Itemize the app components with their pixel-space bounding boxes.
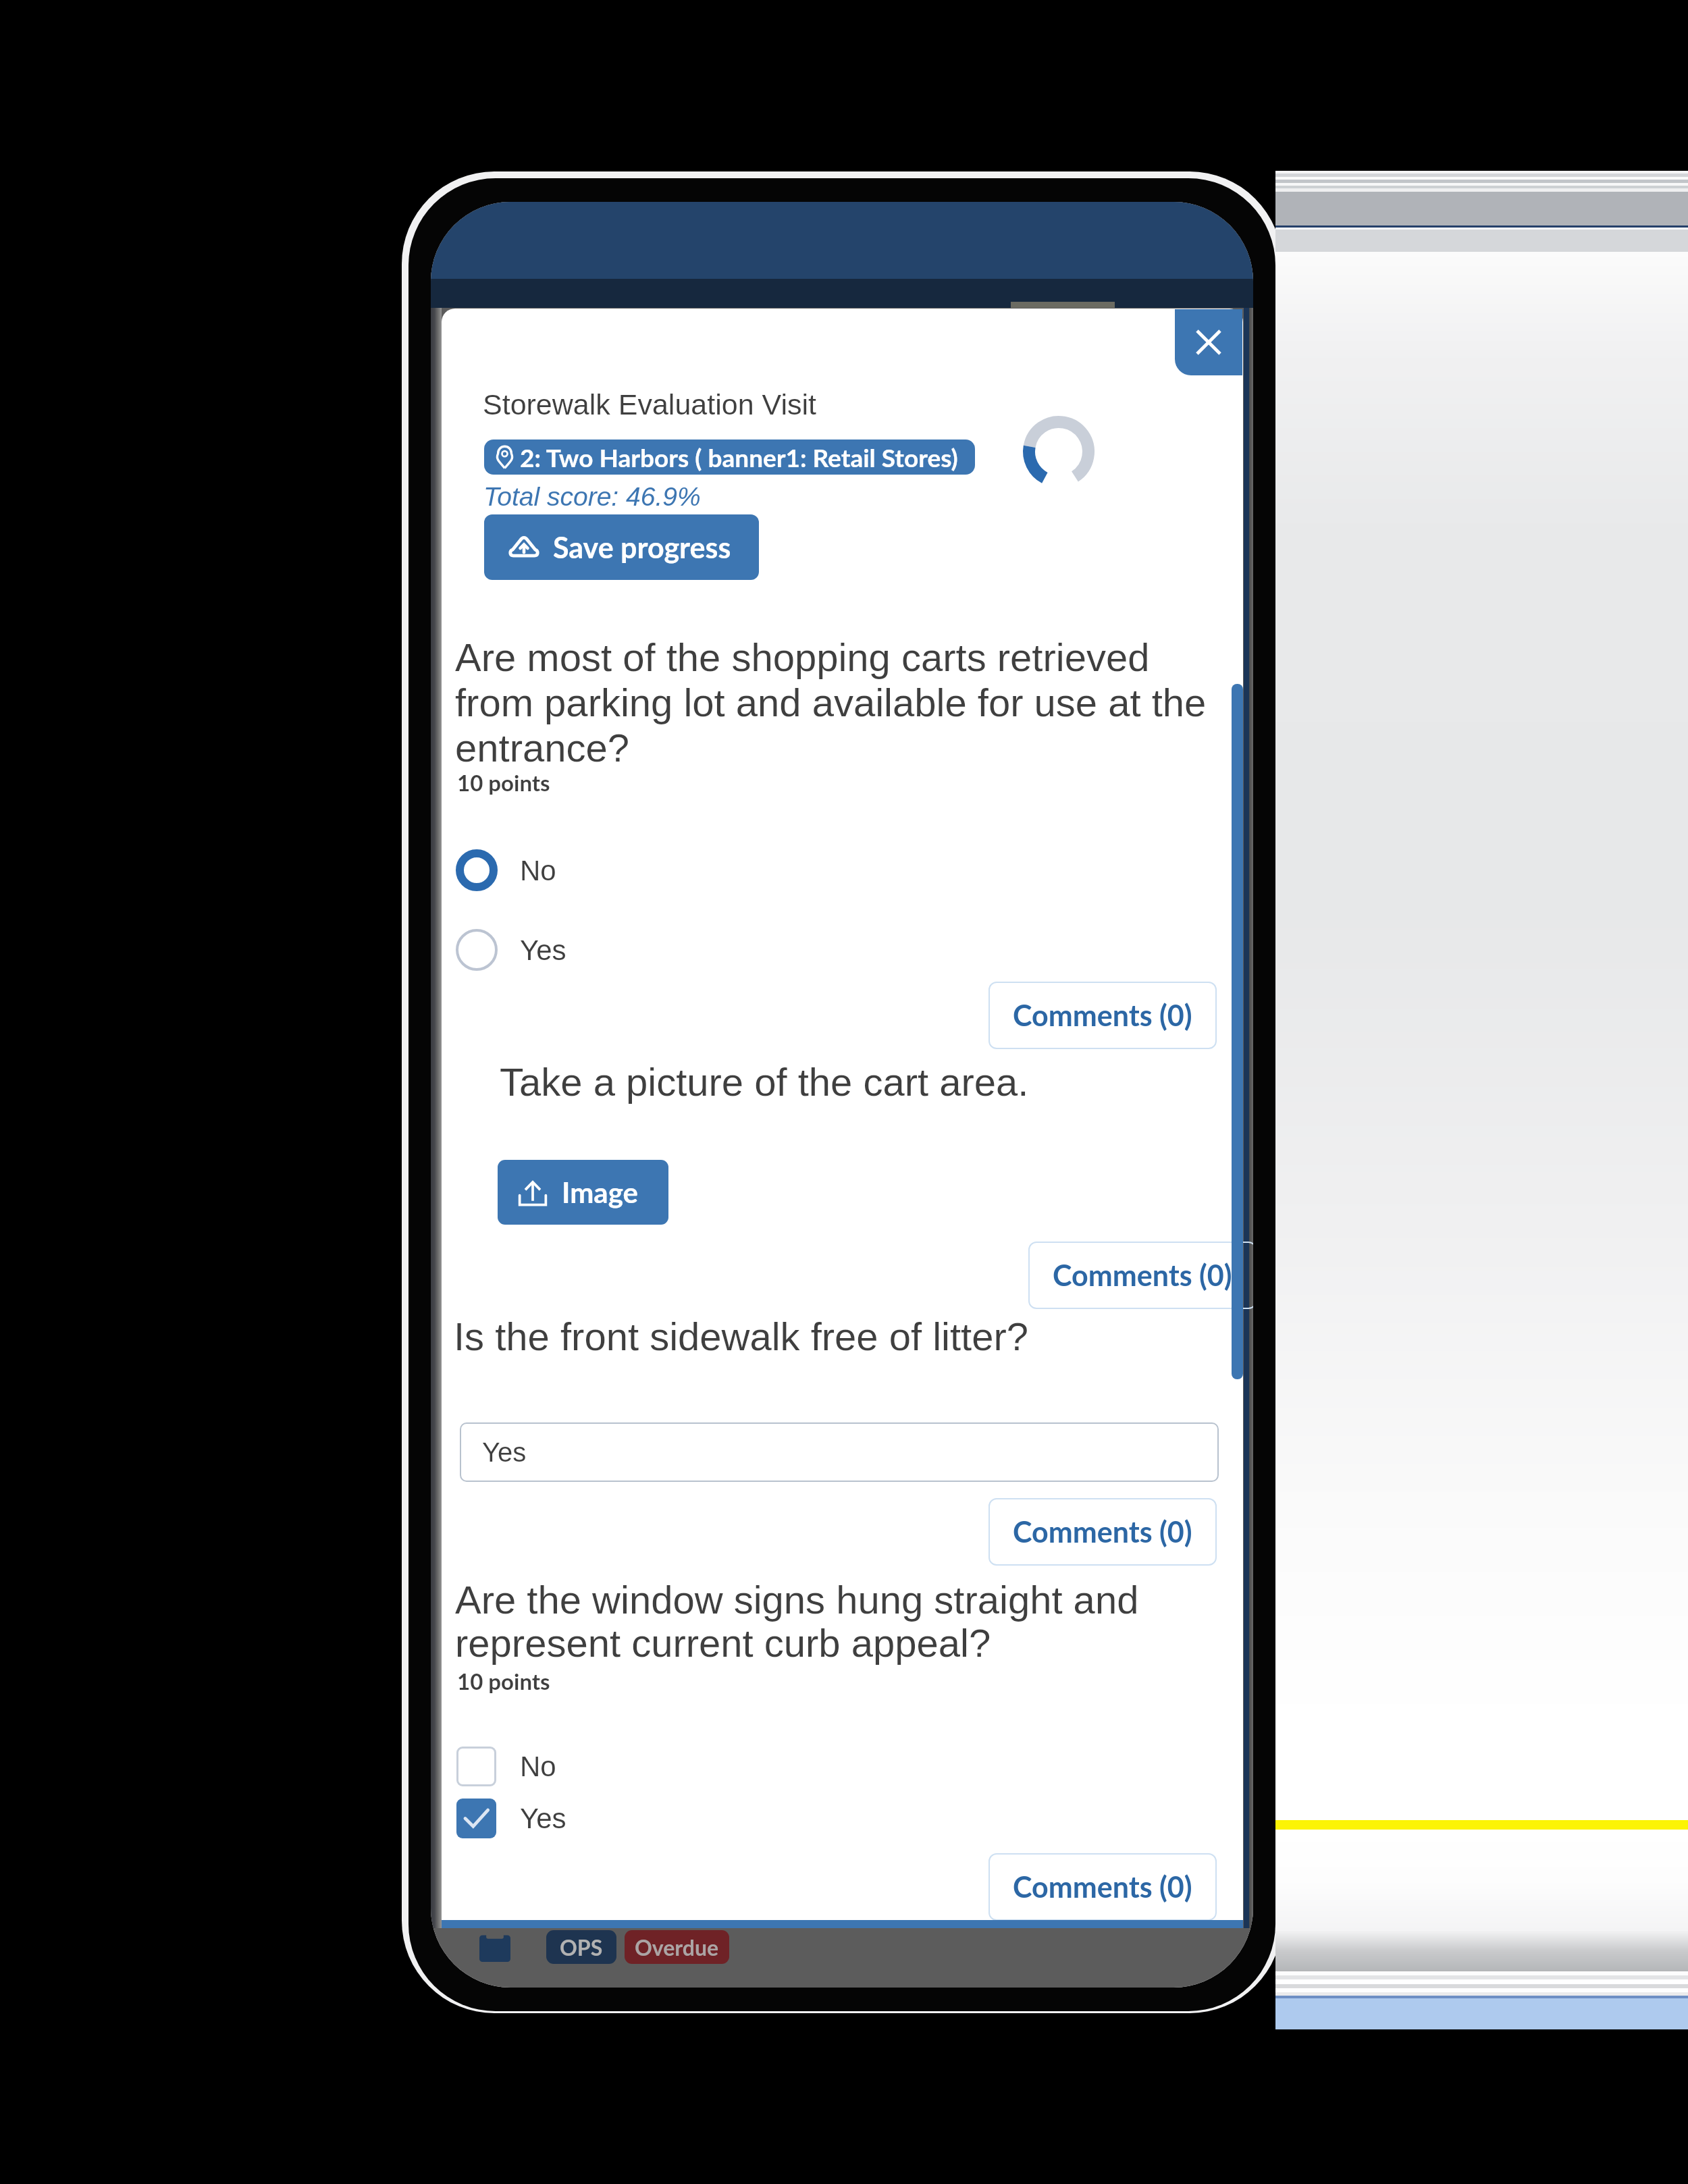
button[interactable]: No xyxy=(456,1747,556,1786)
button[interactable]: Yes xyxy=(456,929,566,971)
staticText: Comments (0) xyxy=(1013,1514,1192,1549)
button[interactable]: Yes xyxy=(456,1799,566,1838)
button[interactable]: 2: Two Harbors ( banner1: Retail Stores) xyxy=(484,440,975,475)
staticText: Comments (0) xyxy=(1013,998,1192,1033)
staticText: 10 points xyxy=(457,769,550,796)
staticText: Image xyxy=(562,1175,638,1209)
staticText: No xyxy=(520,1751,556,1782)
staticText: Total score: 46.9% xyxy=(483,482,701,512)
staticText: Are most of the shopping carts retrieved… xyxy=(455,635,1238,770)
button[interactable]: Image xyxy=(498,1160,668,1225)
staticText: Yes xyxy=(520,1803,566,1834)
staticText: 2: Two Harbors ( banner1: Retail Stores) xyxy=(520,442,958,472)
button[interactable]: Comments (0) xyxy=(1028,1242,1253,1309)
button[interactable]: Task xyxy=(479,1932,510,1962)
staticText: Is the front sidewalk free of litter? xyxy=(454,1314,1029,1358)
button[interactable]: Yes xyxy=(460,1422,1219,1482)
button[interactable]: Comments (0) xyxy=(988,1853,1217,1921)
button[interactable]: No xyxy=(456,849,556,891)
button[interactable]: Comments (0) xyxy=(988,982,1217,1049)
staticText: Are the window signs hung straight and r… xyxy=(455,1578,1238,1665)
staticText: 10 points xyxy=(457,1668,550,1695)
button[interactable]: OPS xyxy=(546,1930,616,1964)
staticText: No xyxy=(520,855,556,886)
staticText: Overdue xyxy=(635,1934,719,1960)
staticText: M xyxy=(495,1985,521,1988)
button[interactable]: Save progress xyxy=(484,514,759,580)
staticText: Storewalk Evaluation Visit xyxy=(483,388,816,421)
staticText: Comments (0) xyxy=(1053,1258,1232,1293)
button[interactable]: Close xyxy=(1175,309,1242,375)
button[interactable]: Comments (0) xyxy=(988,1498,1217,1566)
staticText: Take a picture of the cart area. xyxy=(500,1060,1029,1104)
staticText: Yes xyxy=(520,934,566,966)
button[interactable]: Overdue xyxy=(625,1930,729,1964)
staticText: Comments (0) xyxy=(1013,1869,1192,1905)
staticText: Yes xyxy=(482,1437,527,1468)
staticText: OPS xyxy=(560,1934,603,1960)
staticText: Save progress xyxy=(553,530,731,565)
